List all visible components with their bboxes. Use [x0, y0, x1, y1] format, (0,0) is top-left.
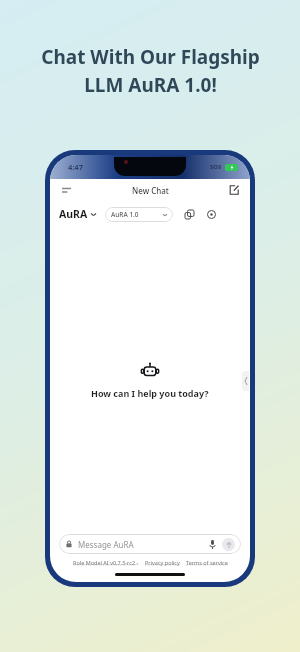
staticText: New Chat [132, 185, 169, 196]
staticText: 4:47 [68, 162, 83, 172]
button[interactable]: Voice input [206, 538, 218, 550]
staticText: Chat With Our Flagship [41, 44, 260, 70]
staticText: SOS [210, 163, 222, 171]
button[interactable]: Options [203, 206, 219, 222]
button[interactable]: New chat [226, 182, 242, 198]
button[interactable]: Role Model AI v0.7.5-rc2 - [73, 559, 139, 566]
button[interactable]: Send [222, 538, 235, 551]
staticText: AuRA 1.0 [111, 210, 139, 219]
button[interactable]: Menu [58, 182, 74, 198]
button[interactable]: Message AuRA [59, 534, 241, 554]
button[interactable]: Copy [181, 206, 197, 222]
button[interactable]: AuRA 1.0 [105, 207, 173, 222]
button[interactable]: Privacy policy [145, 559, 180, 566]
staticText: LLM AuRA 1.0! [84, 72, 217, 98]
staticText: Message AuRA [78, 539, 206, 550]
staticText: AuRA [59, 207, 88, 221]
staticText: How can I help you today? [91, 387, 209, 399]
button[interactable]: AuRA [59, 207, 96, 221]
button[interactable]: Terms of service [186, 559, 228, 566]
button[interactable]: Open panel [242, 371, 249, 391]
